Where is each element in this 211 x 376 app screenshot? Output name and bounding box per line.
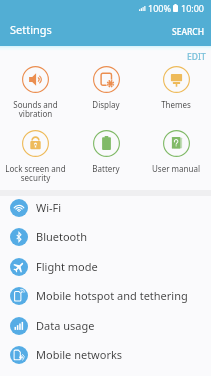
button[interactable]: Data usage bbox=[0, 311, 211, 341]
staticText: Settings bbox=[10, 22, 52, 37]
button[interactable]: Sounds and vibration bbox=[0, 63, 70, 123]
staticText: Battery bbox=[92, 163, 120, 174]
staticText: Lock screen and security bbox=[5, 163, 66, 184]
staticText: EDIT bbox=[187, 51, 206, 63]
staticText: Sounds and vibration bbox=[13, 99, 58, 120]
staticText: Wi-Fi bbox=[36, 200, 62, 215]
button[interactable]: Lock screen and security bbox=[0, 127, 70, 187]
button[interactable]: Display bbox=[71, 63, 141, 113]
button[interactable]: Themes bbox=[141, 63, 211, 113]
button[interactable]: Wi-Fi bbox=[0, 193, 211, 223]
staticText: Mobile hotspot and tethering bbox=[36, 288, 188, 303]
button[interactable]: SEARCH bbox=[166, 22, 211, 42]
button[interactable]: Mobile hotspot and tethering bbox=[0, 281, 211, 311]
staticText: Themes bbox=[161, 99, 191, 110]
button[interactable]: Flight mode bbox=[0, 252, 211, 282]
staticText: User manual bbox=[152, 163, 200, 174]
button[interactable]: EDIT bbox=[182, 48, 211, 66]
staticText: Flight mode bbox=[36, 259, 98, 274]
button[interactable]: Mobile networks bbox=[0, 340, 211, 370]
button[interactable]: Bluetooth bbox=[0, 222, 211, 252]
staticText: Data usage bbox=[36, 318, 95, 333]
button[interactable]: User manual bbox=[141, 127, 211, 177]
staticText: SEARCH bbox=[172, 26, 205, 38]
staticText: Display bbox=[92, 99, 120, 110]
button[interactable]: Battery bbox=[71, 127, 141, 177]
staticText: 100% bbox=[148, 2, 171, 14]
staticText: Bluetooth bbox=[36, 229, 88, 244]
staticText: Mobile networks bbox=[36, 347, 123, 362]
staticText: 10:00 bbox=[181, 2, 205, 14]
